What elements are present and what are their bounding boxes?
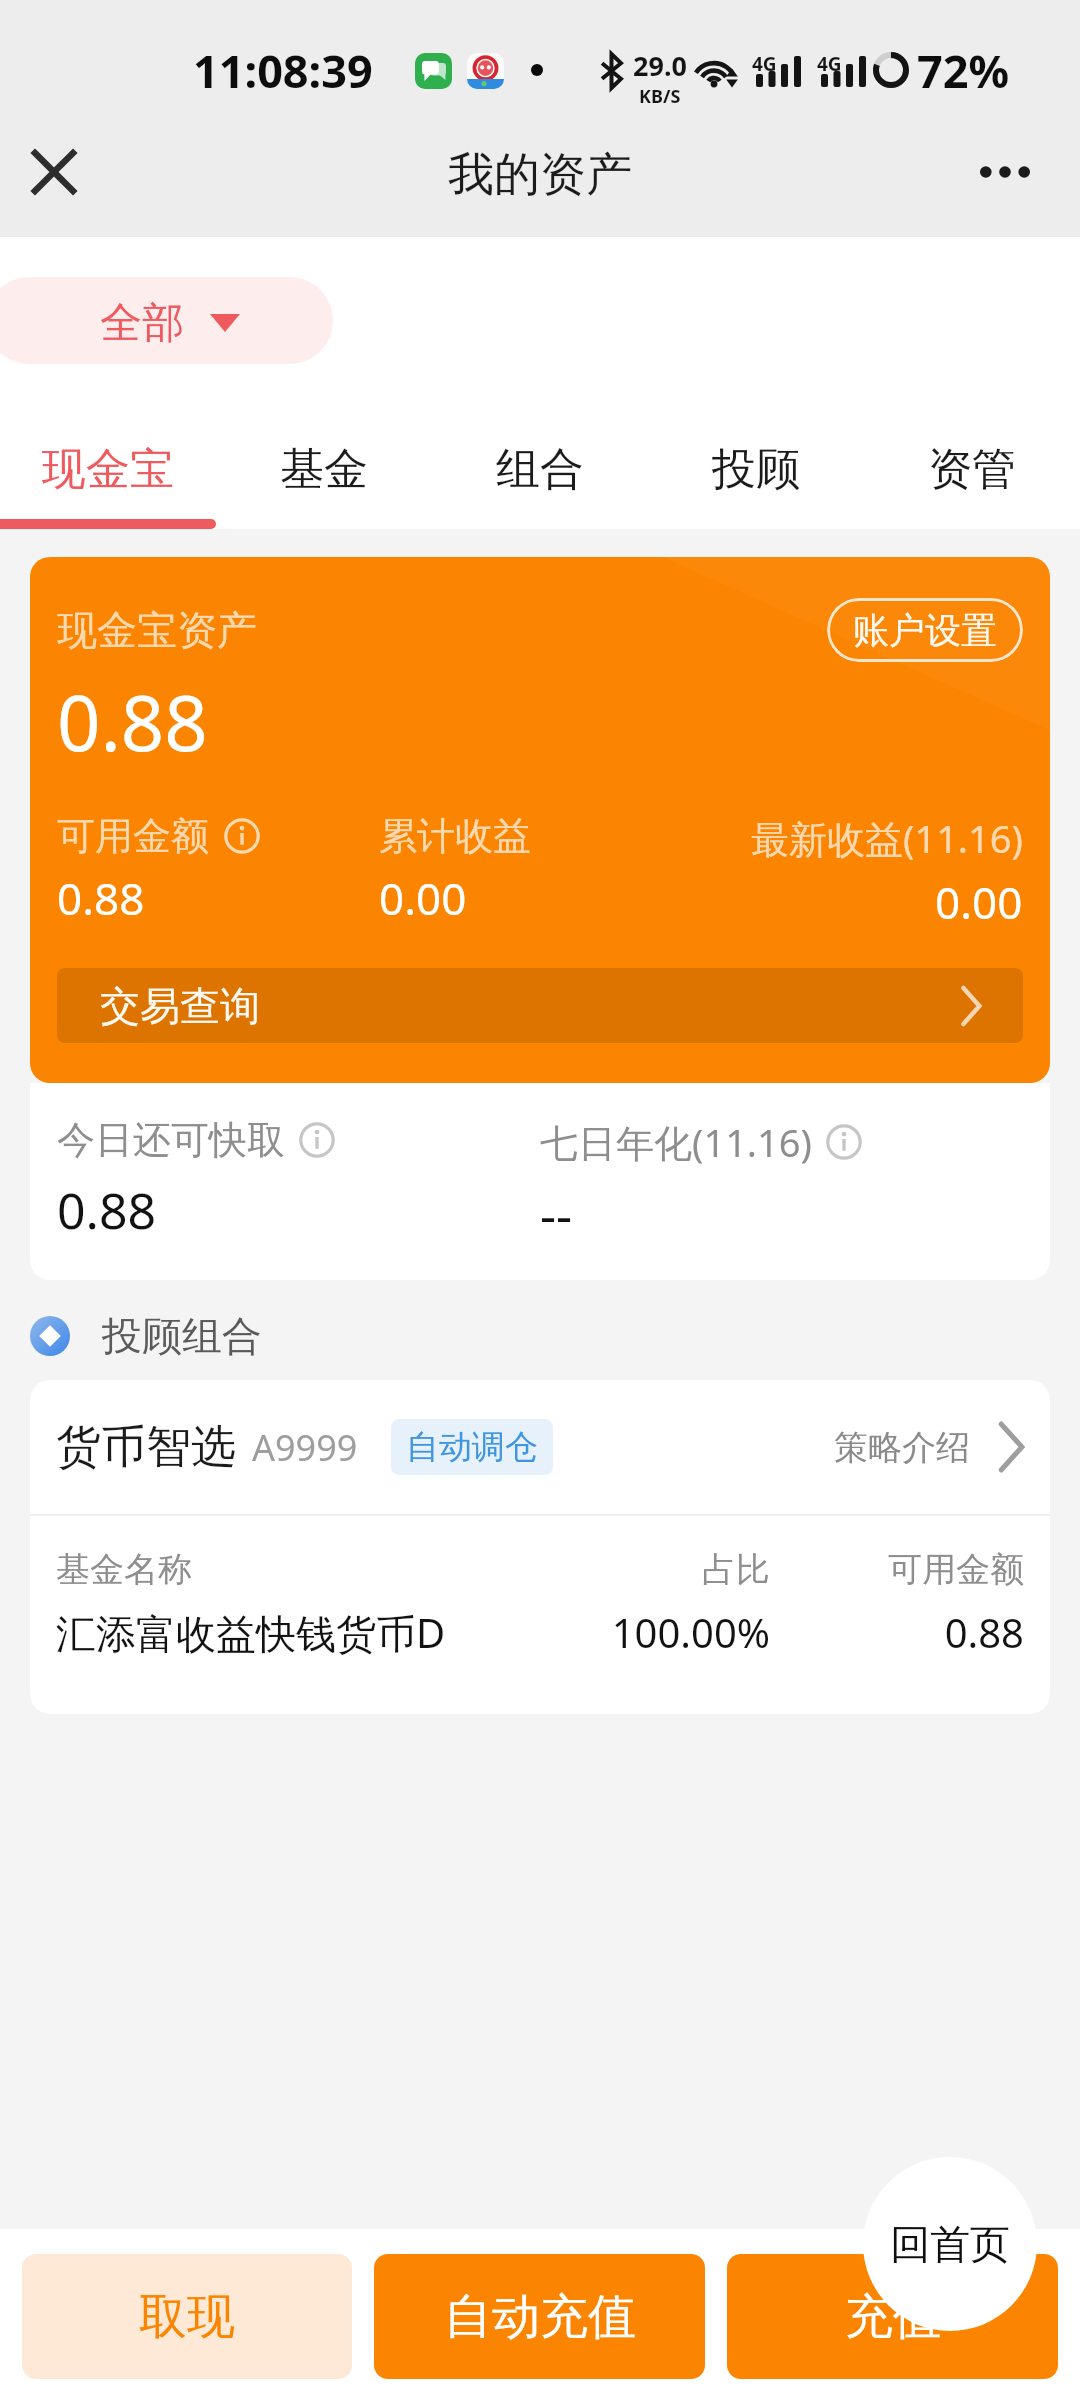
staticText: 0.00	[935, 872, 1023, 932]
staticText: 最新收益(11.16)	[751, 812, 1023, 864]
button[interactable]: 全部	[0, 277, 333, 364]
staticText: 4G	[817, 51, 842, 77]
staticText: KB/S	[639, 84, 681, 109]
staticText: 资管	[928, 442, 1016, 497]
staticText: 基金	[280, 442, 368, 497]
button[interactable]: 回首页	[863, 2157, 1037, 2331]
staticText: 账户设置	[853, 608, 997, 653]
button[interactable]: 现金宝	[0, 433, 216, 505]
staticText: 100.00%	[570, 1605, 770, 1659]
staticText: 自动充值	[444, 2287, 636, 2347]
staticText: 今日还可快取	[57, 1116, 285, 1164]
staticText: 29.0	[633, 47, 687, 84]
staticText: 交易查询	[100, 981, 260, 1031]
staticText: 充值	[845, 2287, 941, 2347]
staticText: 全部	[100, 297, 184, 350]
button[interactable]: 组合	[432, 433, 648, 505]
staticText: 现金宝	[42, 442, 174, 497]
staticText: 0.88	[57, 1176, 157, 1244]
staticText: 现金宝资产	[57, 605, 257, 655]
staticText: 七日年化(11.16)	[540, 1116, 812, 1168]
button[interactable]: 账户设置	[827, 598, 1023, 662]
staticText: 0.88	[770, 1605, 1024, 1659]
staticText: 策略介绍	[834, 1426, 970, 1469]
staticText: 可用金额	[770, 1548, 1024, 1591]
staticText: 0.00	[379, 868, 467, 928]
button[interactable]: 基金	[216, 433, 432, 505]
staticText: 0.88	[57, 670, 208, 774]
button[interactable]: 取现	[22, 2254, 352, 2379]
staticText: --	[540, 1180, 573, 1248]
button[interactable]: 自动充值	[374, 2254, 705, 2379]
staticText: 我的资产	[448, 146, 632, 204]
button[interactable]: 投顾	[648, 433, 864, 505]
staticText: 组合	[496, 442, 584, 497]
staticText: 4G	[752, 51, 777, 77]
staticText: 货币智选	[56, 1419, 236, 1476]
staticText: 汇添富收益快钱货币D	[56, 1605, 570, 1660]
button[interactable]: 充值	[727, 2254, 1058, 2379]
staticText: 投顾组合	[102, 1311, 262, 1361]
staticText: A9999	[252, 1423, 358, 1472]
staticText: 累计收益	[379, 812, 531, 860]
button[interactable]: 货币智选	[30, 1380, 1050, 1514]
button[interactable]: More options	[965, 132, 1045, 212]
button[interactable]: 资管	[864, 433, 1080, 505]
staticText: 11:08:39	[193, 40, 373, 101]
staticText: 自动调仓	[406, 1426, 538, 1468]
staticText: 基金名称	[56, 1548, 570, 1591]
staticText: 取现	[139, 2287, 235, 2347]
staticText: 占比	[570, 1548, 770, 1591]
staticText: 0.88	[57, 868, 145, 928]
staticText: 投顾	[712, 442, 800, 497]
staticText: 72%	[917, 40, 1010, 101]
staticText: 可用金额	[57, 812, 209, 860]
staticText: 回首页	[890, 2219, 1010, 2269]
button[interactable]: Close	[14, 132, 94, 212]
button[interactable]: 交易查询	[57, 968, 1023, 1043]
